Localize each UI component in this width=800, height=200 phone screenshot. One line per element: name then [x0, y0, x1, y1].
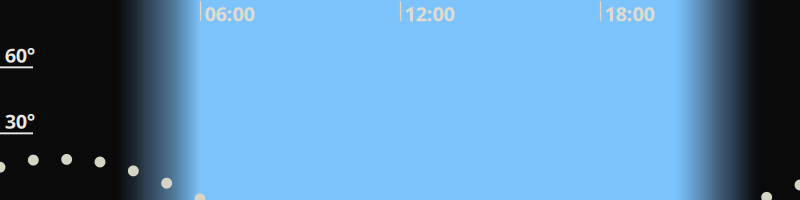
staticText: 12:00 — [404, 0, 454, 27]
staticText: 06:00 — [204, 0, 254, 27]
staticText: 30° — [5, 108, 35, 134]
staticText: 60° — [5, 42, 35, 68]
staticText: 18:00 — [604, 0, 654, 27]
